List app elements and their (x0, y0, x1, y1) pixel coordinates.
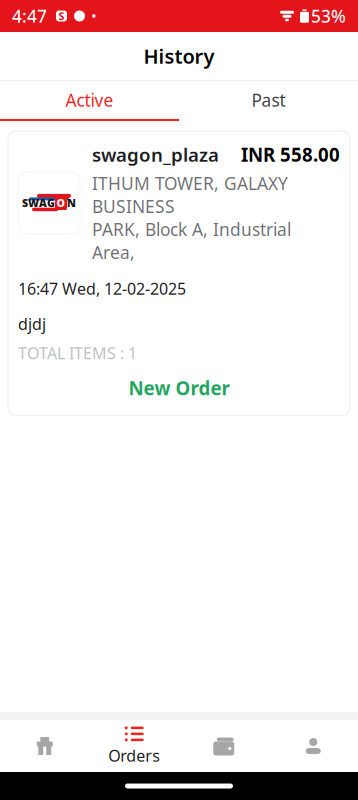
staticText: INR 558.00 (241, 142, 340, 167)
staticText: djdj (18, 313, 46, 334)
staticText: New Order (128, 376, 229, 400)
button[interactable]: Orders (89, 720, 179, 772)
staticText: Orders (108, 745, 160, 766)
staticText: Active (65, 88, 113, 111)
button[interactable]: Home (0, 720, 89, 772)
button[interactable]: Profile (268, 720, 358, 772)
button[interactable]: Active (0, 81, 179, 119)
staticText: TOTAL ITEMS : 1 (18, 342, 137, 364)
button[interactable]: Past (179, 81, 358, 119)
staticText: 4:47 (12, 4, 47, 27)
staticText: 16:47 Wed, 12-02-2025 (18, 278, 186, 299)
staticText: 53% (311, 4, 346, 27)
staticText: History (143, 43, 214, 69)
staticText: O (56, 196, 65, 210)
staticText: S (58, 9, 64, 23)
button[interactable]: New Order (18, 372, 340, 404)
staticText: SWAG (22, 196, 55, 210)
staticText: Past (251, 88, 285, 111)
staticText: ITHUM TOWER, GALAXY BUSINESS PARK, Block… (92, 172, 291, 264)
staticText: swagon_plaza (92, 142, 219, 167)
staticText: N (67, 196, 76, 210)
button[interactable]: Wallet (179, 720, 268, 772)
